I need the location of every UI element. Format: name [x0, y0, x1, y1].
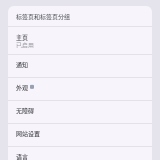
staticText: 网站设置	[16, 129, 40, 138]
button[interactable]: 语言	[8, 147, 152, 160]
staticText: 标签页和标签页分组	[16, 12, 70, 21]
staticText: 已启用	[16, 41, 34, 49]
button[interactable]: 主页	[8, 27, 152, 54]
button[interactable]: 标签页和标签页分组	[8, 6, 152, 26]
button[interactable]: 无障碍	[8, 101, 152, 123]
staticText: 无障碍	[16, 106, 34, 115]
staticText: 语言	[16, 152, 28, 160]
button[interactable]: 网站设置	[8, 124, 152, 146]
button[interactable]: 通知	[8, 55, 152, 77]
staticText: 通知	[16, 60, 28, 69]
button[interactable]: 外观	[8, 78, 152, 100]
staticText: 主页	[16, 33, 28, 42]
staticText: 外观	[16, 83, 28, 92]
